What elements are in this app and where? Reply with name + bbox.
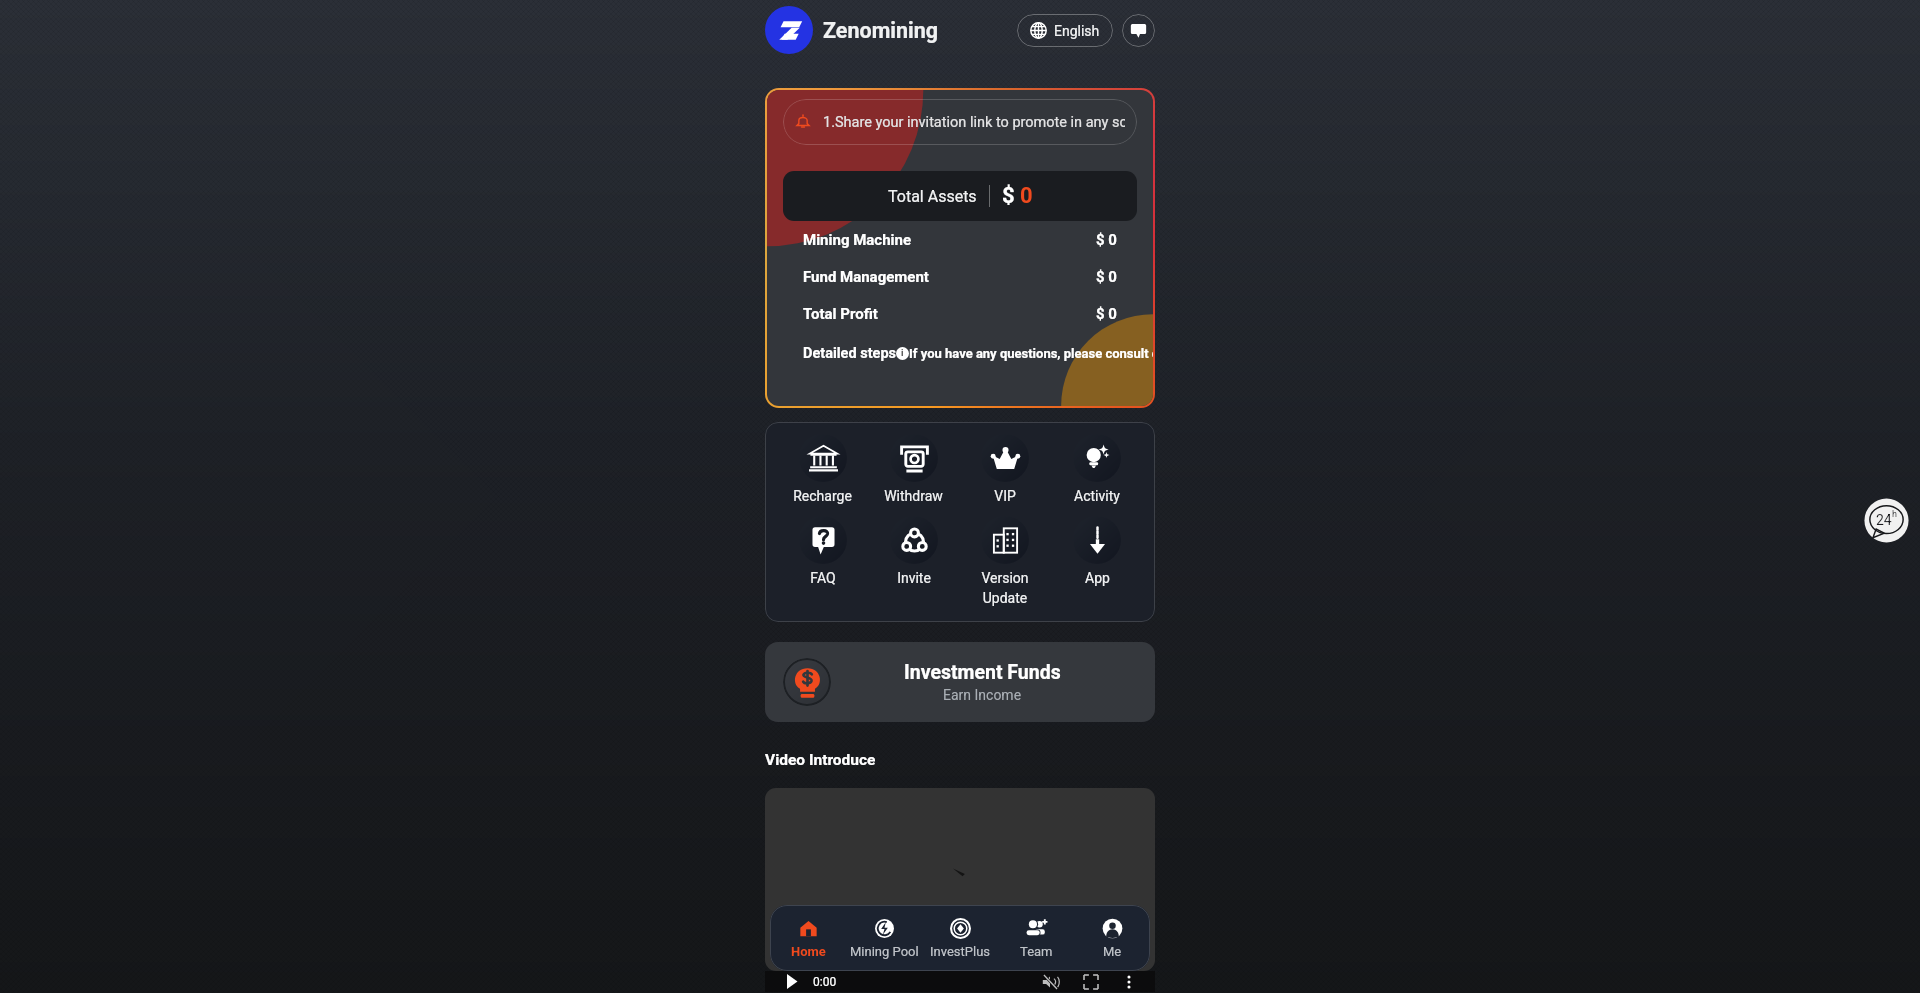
button[interactable]: InvestPlus	[922, 905, 998, 971]
button[interactable]: Version Update	[959, 516, 1051, 606]
staticText: Invite	[897, 570, 931, 586]
button[interactable]: 1.Share your invitation link to promote …	[767, 90, 1153, 406]
button[interactable]: App	[1051, 516, 1143, 586]
button[interactable]: English	[1017, 14, 1113, 47]
staticText: Fund Management	[803, 268, 929, 286]
staticText: $	[1002, 183, 1015, 209]
button[interactable]: Activity	[1051, 434, 1143, 504]
staticText: English	[1054, 23, 1100, 39]
staticText: $ 0	[1096, 268, 1117, 286]
staticText: Zenomining	[823, 18, 939, 43]
button[interactable]: Fund Management	[803, 258, 1117, 295]
staticText: Withdraw	[884, 488, 943, 504]
button[interactable]: Team	[998, 905, 1074, 971]
staticText: If you have any questions, please consul…	[909, 346, 1153, 361]
staticText: 0	[1020, 183, 1033, 209]
staticText: Home	[791, 944, 826, 959]
button[interactable]: Home	[770, 905, 846, 971]
button[interactable]: Withdraw	[868, 434, 959, 504]
button[interactable]: Total Profit	[803, 295, 1117, 332]
staticText: i	[901, 348, 904, 359]
staticText: Mining Pool	[850, 944, 919, 959]
button[interactable]: Mining Pool	[846, 905, 922, 971]
other: Fullscreen	[1084, 975, 1098, 989]
staticText: 24	[1876, 512, 1892, 528]
staticText: 0:00	[813, 975, 837, 989]
button[interactable]: Me	[1074, 905, 1150, 971]
staticText: App	[1085, 570, 1110, 586]
staticText: h	[1892, 509, 1897, 520]
button[interactable]: Invite	[868, 516, 959, 586]
staticText: $ 0	[1096, 305, 1117, 323]
staticText: Me	[1103, 944, 1122, 959]
other: Unmute	[1042, 974, 1058, 990]
other: Play	[784, 974, 799, 989]
button[interactable]: 1.Share your invitation link to promote …	[783, 99, 1137, 145]
staticText: Mining Machine	[803, 231, 912, 249]
staticText: Earn Income	[943, 687, 1022, 703]
staticText: Investment Funds	[904, 661, 1061, 684]
button[interactable]: VIP	[959, 434, 1051, 504]
button[interactable]: Recharge	[777, 434, 868, 504]
staticText: Version Update	[981, 570, 1029, 606]
staticText: Detailed steps	[803, 345, 896, 362]
button[interactable]: Investment Funds	[765, 642, 1155, 722]
button[interactable]: Zenomining logo	[765, 6, 813, 54]
staticText: $ 0	[1096, 231, 1117, 249]
staticText: Total Profit	[803, 305, 878, 323]
staticText: InvestPlus	[930, 944, 991, 959]
staticText: Video Introduce	[765, 751, 876, 769]
staticText: 1.Share your invitation link to promote …	[823, 114, 1125, 131]
other: More options	[1122, 975, 1136, 989]
staticText: Activity	[1074, 488, 1120, 504]
button[interactable]: 24h customer service	[1864, 498, 1909, 543]
staticText: VIP	[994, 488, 1016, 504]
staticText: Team	[1020, 944, 1053, 959]
staticText: Total Assets	[888, 187, 977, 206]
staticText: Recharge	[793, 488, 852, 504]
button[interactable]: FAQ	[777, 516, 868, 586]
button[interactable]: Messages	[1122, 14, 1155, 47]
staticText: FAQ	[810, 570, 836, 586]
button[interactable]: Mining Machine	[803, 221, 1117, 258]
